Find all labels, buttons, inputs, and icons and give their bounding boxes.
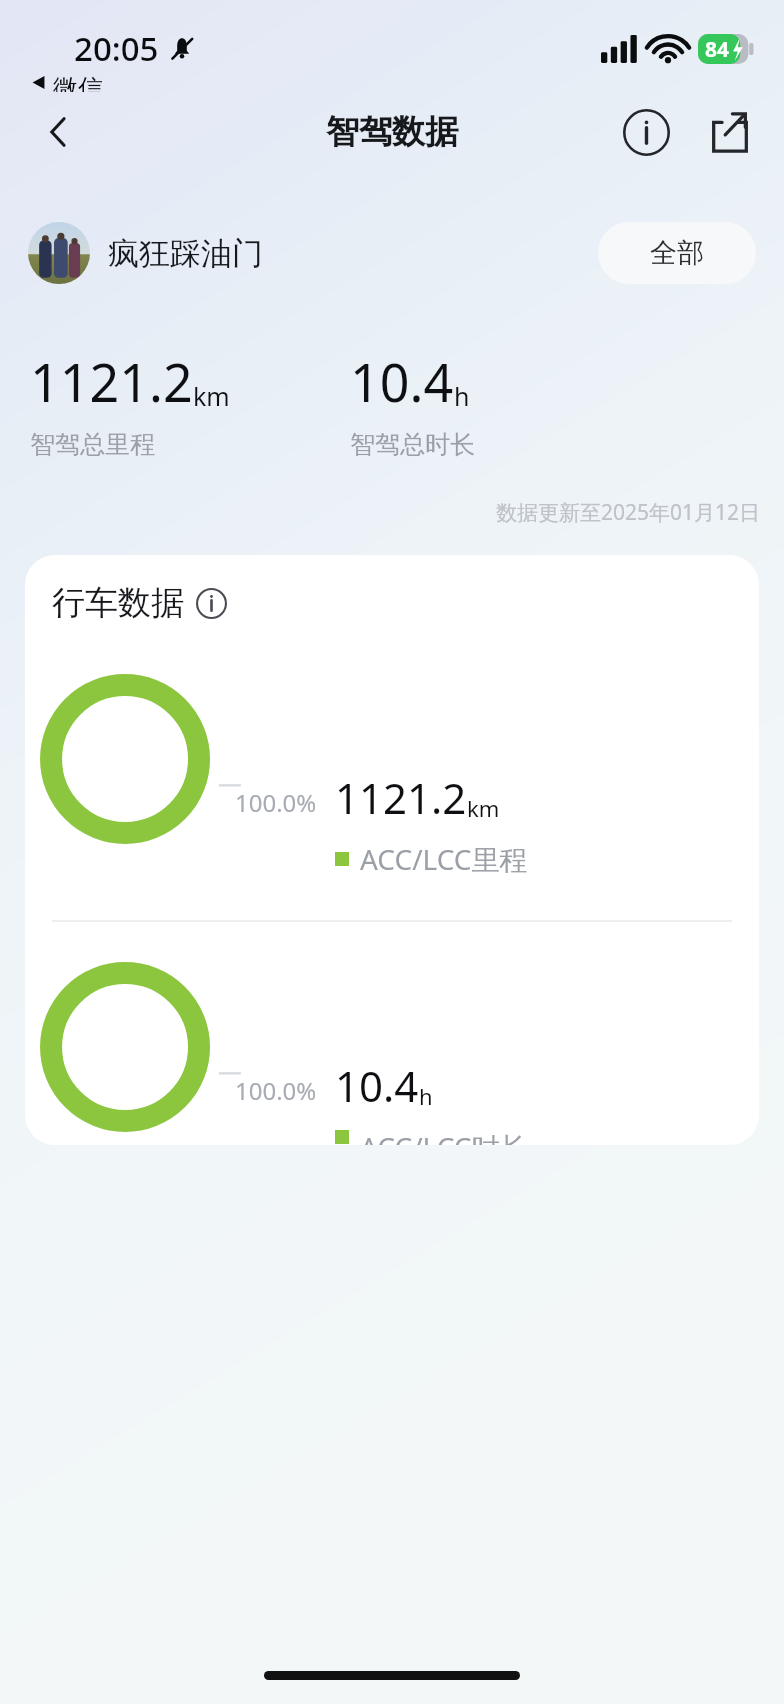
staticText: 行车数据	[52, 582, 184, 624]
staticText: 100.0%	[235, 1074, 317, 1107]
staticText: km	[467, 793, 500, 823]
staticText: 智驾总里程	[30, 429, 155, 460]
staticText: 10.4	[335, 1057, 419, 1114]
staticText: ACC/LCC时长	[360, 1128, 528, 1145]
staticText: 全部	[650, 236, 704, 270]
staticText: 1121.2	[30, 346, 193, 417]
staticText: 微信	[53, 73, 103, 92]
button[interactable]: 疯狂踩油门	[28, 222, 263, 284]
staticText: 1121.2	[335, 769, 467, 826]
staticText: h	[454, 379, 470, 413]
staticText: 20:05	[74, 26, 159, 71]
staticText: 100.0%	[235, 786, 317, 819]
staticText: km	[193, 379, 230, 413]
button[interactable]: Share	[694, 96, 766, 168]
button[interactable]: 行车数据	[52, 582, 227, 624]
staticText: 数据更新至2025年01月12日	[0, 498, 760, 527]
staticText: 10.4	[350, 346, 454, 417]
button[interactable]: Back	[24, 97, 94, 167]
staticText: 84	[705, 35, 730, 64]
staticText: 智驾总时长	[350, 429, 475, 460]
staticText: ACC/LCC里程	[360, 840, 528, 878]
button[interactable]: 全部	[598, 222, 756, 284]
staticText: 智驾数据	[326, 111, 458, 153]
staticText: h	[419, 1081, 433, 1111]
button[interactable]: Information	[610, 96, 682, 168]
staticText: 疯狂踩油门	[108, 234, 263, 273]
